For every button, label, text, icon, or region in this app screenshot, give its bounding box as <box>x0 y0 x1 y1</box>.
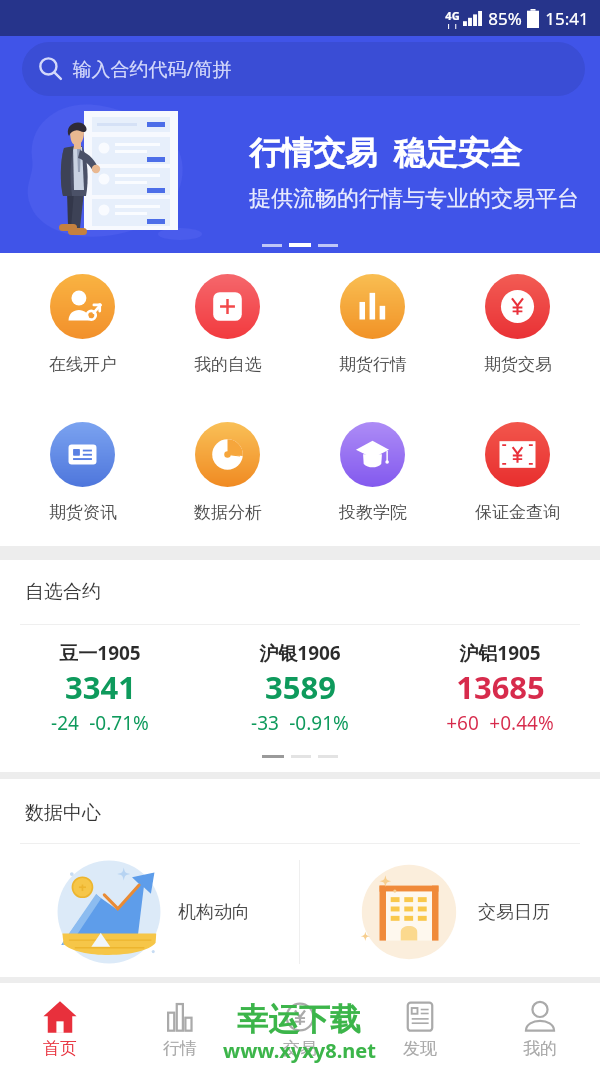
button[interactable]: 沪银1906 <box>200 640 400 734</box>
staticText: -0.71% <box>89 710 149 736</box>
staticText: 保证金查询 <box>475 502 560 523</box>
staticText: 沪铝1905 <box>459 640 541 666</box>
button[interactable]: 在线开户 <box>10 274 155 375</box>
button[interactable]: Discover <box>360 983 480 1067</box>
button[interactable]: 我的自选 <box>155 274 300 375</box>
staticText: 我的自选 <box>194 354 262 375</box>
button[interactable]: 机构动向 <box>0 857 299 967</box>
staticText: 行情 <box>163 1038 197 1059</box>
button[interactable]: 期货资讯 <box>10 422 155 523</box>
staticText: 交易 <box>283 1038 317 1059</box>
staticText: 期货行情 <box>339 354 407 375</box>
staticText: +60 <box>446 710 479 736</box>
staticText: 首页 <box>43 1038 77 1059</box>
button[interactable]: Home <box>0 983 120 1067</box>
staticText: 豆一1905 <box>59 640 141 666</box>
staticText: www.xyxy8.net <box>223 1037 376 1064</box>
button[interactable]: 期货行情 <box>300 274 445 375</box>
staticText: 输入合约代码/简拼 <box>72 56 232 82</box>
staticText: 85% <box>488 7 522 30</box>
button[interactable]: Trade <box>240 983 360 1067</box>
staticText: 交易日历 <box>478 901 550 924</box>
button[interactable]: 保证金查询 <box>445 422 590 523</box>
staticText: 机构动向 <box>178 901 250 924</box>
staticText: 数据中心 <box>25 801 101 825</box>
button[interactable]: 数据分析 <box>155 422 300 523</box>
staticText: 提供流畅的行情与专业的交易平台 <box>249 185 579 213</box>
staticText: 投教学院 <box>339 502 407 523</box>
staticText: 发现 <box>403 1038 437 1059</box>
staticText: 3341 <box>65 666 136 708</box>
button[interactable]: 豆一1905 <box>0 640 200 734</box>
button[interactable]: 沪铝1905 <box>400 640 600 734</box>
staticText: +0.44% <box>489 710 554 736</box>
staticText: 自选合约 <box>25 580 101 604</box>
staticText: 期货交易 <box>484 354 552 375</box>
staticText: 幸运下载 <box>237 1000 361 1039</box>
staticText: 行情交易 稳定安全 <box>249 130 522 174</box>
staticText: 3589 <box>265 666 336 708</box>
button[interactable]: Quotes <box>120 983 240 1067</box>
staticText: -24 <box>51 710 79 736</box>
staticText: 我的 <box>523 1038 557 1059</box>
button[interactable]: 输入合约代码/简拼 <box>22 42 585 96</box>
staticText: 沪银1906 <box>259 640 341 666</box>
staticText: -0.91% <box>289 710 349 736</box>
staticText: -33 <box>251 710 279 736</box>
staticText: 4G <box>445 8 460 23</box>
staticText: 期货资讯 <box>49 502 117 523</box>
staticText: 在线开户 <box>49 354 117 375</box>
button[interactable]: 期货交易 <box>445 274 590 375</box>
staticText: 15:41 <box>545 7 589 30</box>
button[interactable]: 投教学院 <box>300 422 445 523</box>
staticText: 13685 <box>456 666 545 708</box>
button[interactable]: Profile <box>480 983 600 1067</box>
button[interactable]: 交易日历 <box>300 857 600 967</box>
staticText: 数据分析 <box>194 502 262 523</box>
